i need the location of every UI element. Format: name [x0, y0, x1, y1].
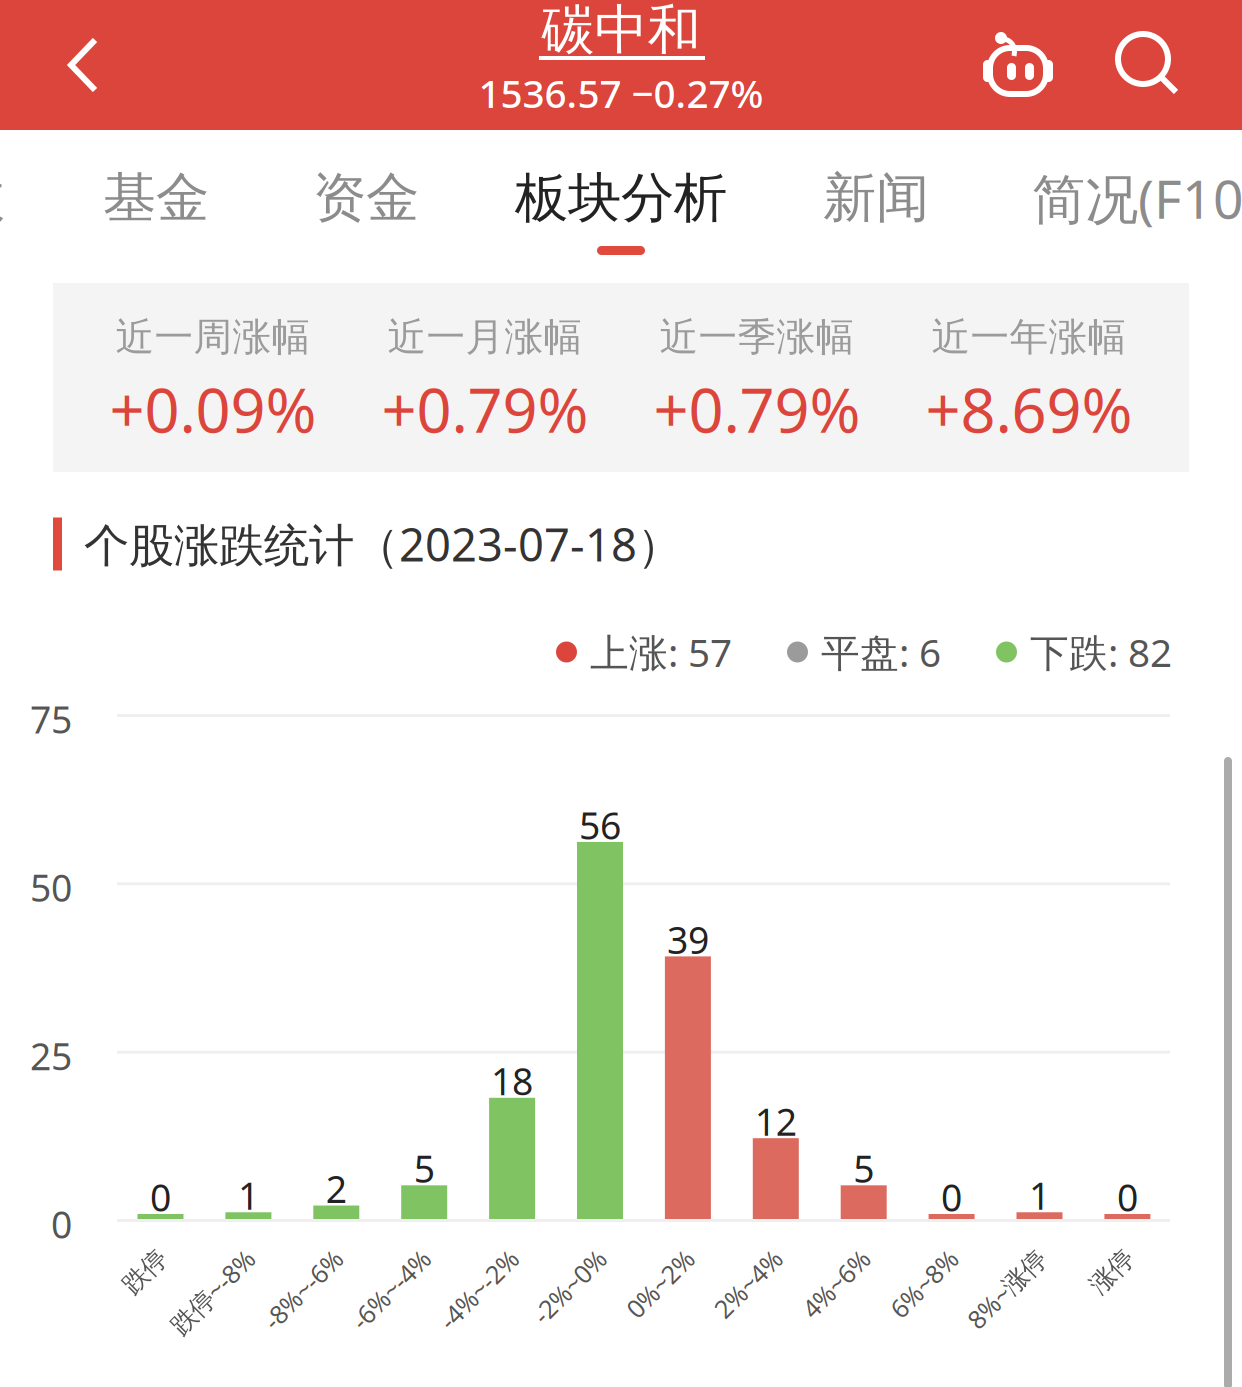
staticText: +0.79% — [381, 368, 588, 450]
staticText: 18 — [491, 1056, 533, 1106]
staticText: 4%~6% — [782, 1237, 866, 1271]
staticText: 跌停~-8% — [143, 1237, 250, 1271]
staticText: +0.79% — [653, 368, 860, 450]
staticText: -6%~-4% — [326, 1237, 426, 1271]
staticText: 跌停 — [112, 1238, 162, 1269]
button[interactable]: 简况(F10) — [986, 130, 1242, 254]
staticText: 56 — [579, 800, 621, 850]
staticText: 1536.57 −0.27% — [478, 67, 763, 119]
button[interactable]: 新闻 — [776, 130, 976, 254]
staticText: 上涨: 57 — [590, 626, 732, 678]
staticText: +8.69% — [925, 368, 1132, 450]
staticText: 近一年涨幅 — [931, 313, 1126, 361]
staticText: +0.09% — [109, 368, 316, 450]
staticText: 2%~4% — [694, 1237, 778, 1271]
button[interactable]: Back — [18, 5, 148, 125]
button[interactable]: 数 — [0, 130, 38, 254]
staticText: -4%~-2% — [414, 1237, 514, 1271]
staticText: 1 — [238, 1170, 259, 1220]
staticText: 0 — [51, 1199, 72, 1249]
staticText: 涨停 — [1079, 1238, 1129, 1269]
staticText: 平盘: 6 — [821, 626, 941, 678]
staticText: 1 — [1029, 1170, 1050, 1220]
staticText: 0%~2% — [606, 1237, 690, 1271]
button[interactable]: AI assistant — [963, 2, 1073, 122]
staticText: 2 — [326, 1164, 347, 1213]
button[interactable]: 板块分析 — [491, 130, 751, 254]
staticText: 基金 — [103, 165, 209, 231]
staticText: 12 — [755, 1096, 797, 1146]
staticText: 25 — [30, 1031, 72, 1080]
staticText: 近一月涨幅 — [387, 313, 582, 361]
staticText: -2%~0% — [510, 1237, 602, 1271]
button[interactable]: 资金 — [266, 130, 466, 254]
staticText: 个股涨跌统计（2023-07-18） — [84, 514, 682, 574]
staticText: 50 — [30, 862, 72, 912]
staticText: 5 — [414, 1143, 435, 1193]
staticText: 数 — [0, 165, 4, 231]
staticText: 新闻 — [823, 165, 929, 231]
staticText: 6%~8% — [870, 1237, 954, 1271]
staticText: 近一季涨幅 — [659, 313, 854, 361]
staticText: 下跌: 82 — [1030, 626, 1172, 678]
staticText: 板块分析 — [515, 165, 727, 231]
staticText: 5 — [853, 1143, 874, 1193]
staticText: 0 — [941, 1172, 962, 1222]
staticText: 39 — [667, 915, 709, 964]
staticText: 75 — [30, 694, 72, 744]
staticText: 简况(F10) — [1032, 163, 1242, 233]
staticText: 碳中和 — [541, 0, 700, 63]
staticText: 0 — [150, 1172, 171, 1222]
staticText: 8%~涨停 — [942, 1237, 1041, 1271]
staticText: 0 — [1117, 1172, 1138, 1222]
button[interactable]: Search — [1094, 5, 1204, 125]
button[interactable]: 基金 — [56, 130, 256, 254]
staticText: -8%~-6% — [238, 1237, 338, 1271]
staticText: 近一周涨幅 — [115, 313, 310, 361]
staticText: 资金 — [313, 165, 419, 231]
